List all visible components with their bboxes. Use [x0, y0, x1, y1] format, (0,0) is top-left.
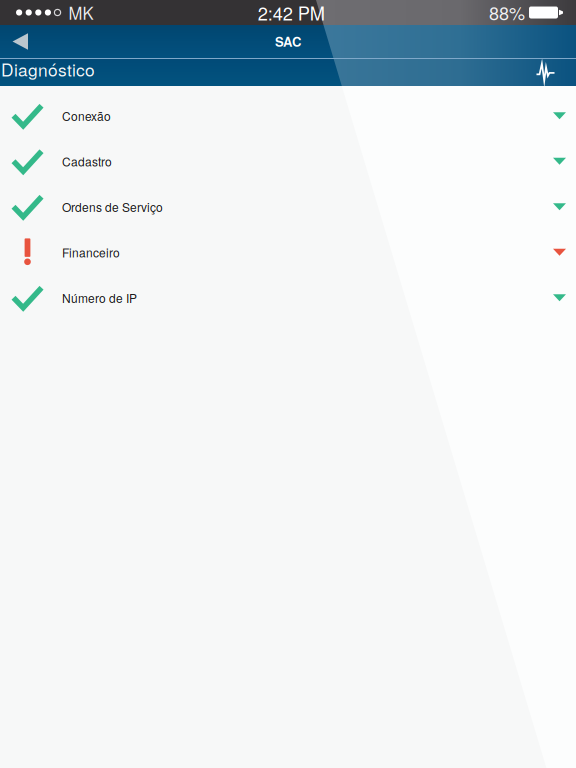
button[interactable]: Número de IP [0, 275, 576, 320]
button[interactable]: Back [0, 25, 42, 58]
staticText: MK [69, 1, 94, 24]
staticText: Cadastro [62, 153, 112, 170]
staticText: Financeiro [62, 244, 120, 261]
staticText: 2:42 PM [258, 0, 325, 26]
button[interactable]: Conexão [0, 93, 576, 138]
staticText: Diagnóstico [1, 57, 95, 81]
button[interactable]: Ordens de Serviço [0, 184, 576, 229]
staticText: SAC [275, 32, 301, 51]
staticText: Ordens de Serviço [62, 198, 163, 215]
button[interactable]: Diagnostics [526, 58, 576, 86]
staticText: Conexão [62, 107, 111, 124]
staticText: 88% [489, 0, 525, 25]
button[interactable]: Financeiro [0, 229, 576, 275]
staticText: Número de IP [62, 289, 137, 306]
button[interactable]: Cadastro [0, 138, 576, 184]
